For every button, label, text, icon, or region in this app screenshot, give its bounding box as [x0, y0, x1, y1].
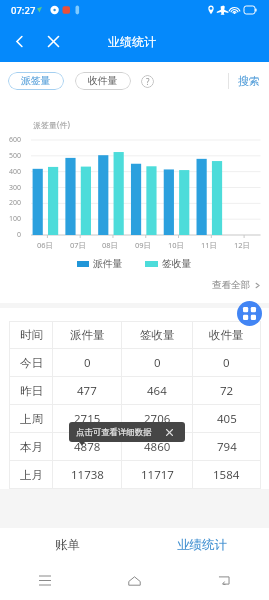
- button[interactable]: 账单: [0, 528, 134, 561]
- staticText: 派件量: [70, 328, 105, 342]
- staticText: 464: [147, 383, 167, 399]
- staticText: 今日: [20, 356, 43, 370]
- staticText: 本月: [20, 440, 43, 454]
- button[interactable]: 本月: [9, 433, 261, 461]
- staticText: 500: [9, 151, 22, 161]
- staticText: 11717: [141, 467, 174, 483]
- staticText: 签收量: [162, 258, 192, 270]
- button[interactable]: Back: [179, 561, 269, 600]
- button[interactable]: Recents: [0, 561, 89, 600]
- staticText: 09日: [135, 240, 152, 250]
- button[interactable]: 搜索: [229, 62, 261, 100]
- staticText: 2706: [144, 411, 171, 427]
- staticText: 时间: [20, 328, 43, 342]
- staticText: 业绩统计: [108, 34, 156, 49]
- button[interactable]: 派签量: [8, 72, 64, 90]
- staticText: 上周: [20, 412, 43, 426]
- staticText: 0: [223, 355, 230, 371]
- staticText: 300: [9, 183, 22, 193]
- button[interactable]: 点击可查看详细数据: [69, 422, 185, 442]
- button[interactable]: Home: [89, 561, 179, 600]
- staticText: 11日: [201, 240, 218, 250]
- staticText: 4860: [144, 439, 171, 455]
- button[interactable]: 业绩统计: [134, 528, 269, 561]
- staticText: 派签量(件): [33, 119, 70, 130]
- staticText: 收件量: [88, 75, 118, 87]
- staticText: 昨日: [20, 384, 43, 398]
- button[interactable]: 收件量: [75, 72, 131, 90]
- staticText: 07:27: [11, 4, 36, 17]
- staticText: 08日: [102, 240, 119, 250]
- button[interactable]: 今日: [9, 349, 261, 377]
- button[interactable]: Help: [141, 75, 154, 88]
- staticText: 查看全部: [212, 279, 250, 291]
- staticText: 10日: [168, 240, 185, 250]
- staticText: 0: [154, 355, 161, 371]
- staticText: 100: [9, 214, 22, 224]
- staticText: 派签量: [21, 75, 51, 87]
- button[interactable]: 昨日: [9, 377, 261, 405]
- staticText: 11738: [71, 467, 104, 483]
- staticText: 账单: [55, 537, 80, 553]
- button[interactable]: More options: [237, 301, 262, 326]
- button[interactable]: Close: [38, 20, 68, 62]
- staticText: ?: [146, 76, 150, 87]
- staticText: 上月: [20, 468, 43, 482]
- staticText: 06日: [37, 240, 54, 250]
- staticText: 4878: [74, 439, 101, 455]
- staticText: 点击可查看详细数据: [76, 427, 152, 438]
- staticText: 405: [217, 411, 237, 427]
- staticText: 收件量: [209, 328, 244, 342]
- staticText: 72: [220, 383, 234, 399]
- button[interactable]: 时间: [9, 321, 261, 349]
- staticText: 签收量: [140, 328, 175, 342]
- button[interactable]: 上月: [9, 461, 261, 489]
- staticText: 派件量: [93, 258, 123, 270]
- staticText: 0: [84, 355, 91, 371]
- staticText: 12日: [234, 240, 251, 250]
- staticText: 600: [9, 135, 22, 145]
- staticText: 477: [77, 383, 97, 399]
- staticText: 200: [9, 198, 22, 208]
- staticText: 07日: [70, 240, 87, 250]
- staticText: 业绩统计: [177, 537, 227, 553]
- staticText: 搜索: [238, 74, 260, 88]
- button[interactable]: 查看全部: [204, 277, 269, 293]
- staticText: 794: [217, 439, 237, 455]
- staticText: 2715: [74, 411, 101, 427]
- staticText: 0: [17, 230, 22, 240]
- staticText: 1584: [213, 467, 240, 483]
- button[interactable]: 上周: [9, 405, 261, 433]
- staticText: 400: [9, 167, 22, 177]
- button[interactable]: Back: [0, 20, 38, 62]
